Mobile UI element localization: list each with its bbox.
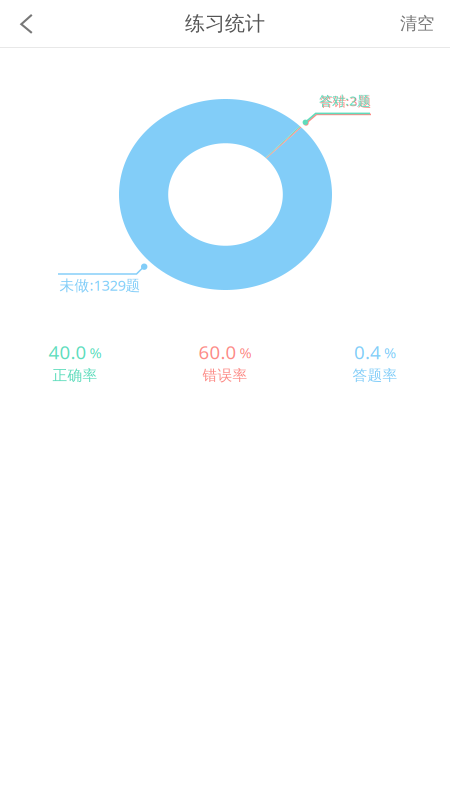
- staticText: 0.4: [354, 340, 381, 364]
- button[interactable]: 清空: [384, 0, 450, 47]
- staticText: %: [89, 343, 101, 362]
- staticText: 未做:1329题: [59, 275, 140, 295]
- staticText: 40.0: [48, 340, 86, 364]
- staticText: 清空: [400, 13, 434, 34]
- staticText: 错误率: [202, 366, 247, 384]
- staticText: 练习统计: [185, 11, 265, 36]
- staticText: 正确率: [52, 366, 97, 384]
- staticText: 答题率: [352, 366, 397, 384]
- staticText: %: [239, 343, 251, 362]
- staticText: 答错:3题: [320, 92, 371, 110]
- staticText: %: [384, 343, 396, 362]
- button[interactable]: Back: [0, 0, 48, 47]
- staticText: 答对:2题: [319, 91, 370, 109]
- staticText: 60.0: [198, 340, 236, 364]
